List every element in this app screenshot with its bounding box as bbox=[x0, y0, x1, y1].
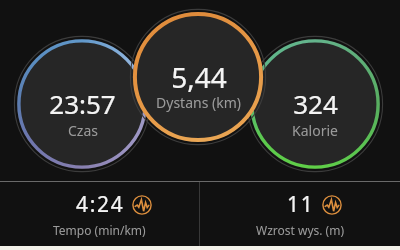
staticText: 11 bbox=[287, 190, 315, 219]
staticText: 4:24 bbox=[76, 190, 125, 219]
staticText: Tempo (min/km) bbox=[53, 222, 146, 238]
button[interactable]: 5,44 bbox=[127, 6, 269, 148]
staticText: 5,44 bbox=[171, 58, 227, 96]
other: Heart rate graph bbox=[322, 195, 342, 215]
staticText: Wzrost wys. (m) bbox=[256, 222, 345, 238]
staticText: Dystans (km) bbox=[156, 93, 241, 112]
button[interactable]: 324 bbox=[244, 33, 386, 175]
button[interactable]: 11 bbox=[200, 182, 400, 246]
staticText: 324 bbox=[293, 86, 338, 121]
button[interactable]: 4:24 bbox=[0, 182, 199, 246]
button[interactable]: 23:57 bbox=[11, 33, 153, 175]
staticText: Kalorie bbox=[292, 121, 338, 140]
staticText: Czas bbox=[68, 121, 98, 140]
other: Heart rate graph bbox=[132, 195, 152, 215]
staticText: 23:57 bbox=[49, 86, 116, 121]
